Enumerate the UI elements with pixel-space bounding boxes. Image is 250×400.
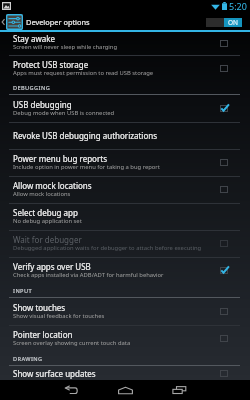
button[interactable]: Verify apps over USB bbox=[0, 257, 250, 284]
staticText: ON bbox=[228, 18, 239, 27]
staticText: 5:20 bbox=[229, 0, 247, 12]
staticText: Screen will never sleep while charging bbox=[13, 43, 118, 51]
staticText: Debug mode when USB is connected bbox=[13, 109, 115, 117]
staticText: Show touches bbox=[13, 302, 66, 313]
button[interactable]: Pointer location bbox=[0, 325, 250, 352]
other: Navigate up bbox=[1, 18, 5, 26]
staticText: Power menu bug reports bbox=[13, 153, 107, 164]
button[interactable]: Recent apps bbox=[159, 380, 199, 400]
staticText: No debug application set bbox=[13, 217, 82, 225]
button[interactable]: USB debugging bbox=[0, 95, 250, 122]
staticText: INPUT bbox=[13, 287, 33, 295]
staticText: Developer options bbox=[26, 17, 90, 27]
button[interactable]: Back bbox=[51, 380, 91, 400]
staticText: Verify apps over USB bbox=[13, 261, 91, 272]
staticText: Allow mock locations bbox=[13, 180, 92, 191]
button[interactable]: Stay awake bbox=[0, 32, 250, 55]
button[interactable]: Show surface updates bbox=[0, 366, 250, 380]
staticText: Show visual feedback for touches bbox=[13, 312, 105, 320]
staticText: Apps must request permission to read USB… bbox=[13, 69, 154, 77]
staticText: Revoke USB debugging authorizations bbox=[13, 130, 158, 141]
staticText: DRAWING bbox=[13, 355, 43, 363]
button[interactable]: Developer options on/off bbox=[206, 18, 242, 27]
staticText: Select debug app bbox=[13, 207, 78, 218]
staticText: Stay awake bbox=[13, 33, 55, 44]
staticText: USB debugging bbox=[13, 99, 72, 110]
button[interactable]: Navigate up bbox=[0, 14, 25, 30]
staticText: Protect USB storage bbox=[13, 59, 89, 70]
button[interactable]: Protect USB storage bbox=[0, 55, 250, 81]
button[interactable]: Allow mock locations bbox=[0, 176, 250, 203]
staticText: Allow mock locations bbox=[13, 190, 71, 198]
button[interactable]: Select debug app bbox=[0, 203, 250, 230]
button[interactable]: Wait for debugger bbox=[0, 230, 250, 257]
staticText: Wait for debugger bbox=[13, 234, 82, 245]
button[interactable]: Home bbox=[105, 380, 145, 400]
button[interactable]: Revoke USB debugging authorizations bbox=[0, 122, 250, 149]
staticText: Pointer location bbox=[13, 329, 73, 340]
button[interactable]: Power menu bug reports bbox=[0, 149, 250, 176]
staticText: Screen overlay showing current touch dat… bbox=[13, 339, 131, 347]
staticText: DEBUGGING bbox=[13, 84, 51, 92]
staticText: Include option in power menu for taking … bbox=[13, 163, 160, 171]
staticText: Show surface updates bbox=[13, 368, 96, 379]
staticText: Check apps installed via ADB/ADT for har… bbox=[13, 271, 164, 279]
button[interactable]: Show touches bbox=[0, 298, 250, 325]
staticText: Debugged application waits for debugger … bbox=[13, 244, 202, 252]
